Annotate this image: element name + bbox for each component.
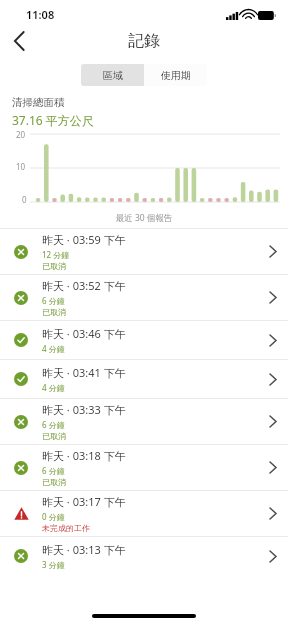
staticText: 昨天 · 03:33 下午: [42, 402, 126, 417]
staticText: 11:08: [26, 7, 55, 22]
button[interactable]: 區域: [81, 64, 144, 86]
button[interactable]: 昨天 · 03:46 下午: [0, 321, 288, 359]
staticText: 3 分鐘: [42, 559, 65, 570]
button[interactable]: 昨天 · 03:33 下午: [0, 399, 288, 444]
staticText: 昨天 · 03:13 下午: [42, 542, 126, 557]
staticText: 使用期: [161, 69, 191, 82]
staticText: 0 分鐘: [42, 511, 65, 522]
button[interactable]: 昨天 · 03:13 下午: [0, 537, 288, 575]
staticText: 20: [16, 129, 26, 140]
staticText: 清掃總面積: [12, 96, 65, 109]
staticText: 昨天 · 03:46 下午: [42, 326, 126, 341]
staticText: 6 分鐘: [42, 465, 65, 476]
staticText: 已取消: [42, 261, 66, 271]
staticText: 37.16 平方公尺: [12, 112, 94, 128]
staticText: 4 分鐘: [42, 382, 65, 393]
button[interactable]: 使用期: [144, 64, 207, 86]
staticText: 未完成的工作: [42, 523, 90, 533]
button[interactable]: 昨天 · 03:17 下午: [0, 491, 288, 536]
button[interactable]: 昨天 · 03:18 下午: [0, 445, 288, 490]
staticText: 昨天 · 03:52 下午: [42, 278, 126, 293]
staticText: 12 分鐘: [42, 249, 70, 260]
button[interactable]: 昨天 · 03:52 下午: [0, 275, 288, 320]
staticText: 昨天 · 03:18 下午: [42, 448, 126, 463]
button[interactable]: 昨天 · 03:59 下午: [0, 229, 288, 274]
staticText: 昨天 · 03:59 下午: [42, 232, 126, 247]
staticText: 4 分鐘: [42, 343, 65, 354]
staticText: 6 分鐘: [42, 419, 65, 430]
staticText: 0: [22, 194, 27, 205]
staticText: 已取消: [42, 307, 66, 317]
staticText: 最近 30 個報告: [0, 212, 288, 224]
staticText: 昨天 · 03:17 下午: [42, 494, 126, 509]
staticText: 記錄: [128, 31, 160, 51]
staticText: 6 分鐘: [42, 295, 65, 306]
button[interactable]: Back: [0, 24, 38, 58]
staticText: 已取消: [42, 477, 66, 487]
button[interactable]: 昨天 · 03:41 下午: [0, 360, 288, 398]
staticText: 已取消: [42, 431, 66, 441]
staticText: 10: [16, 161, 26, 172]
staticText: 區域: [103, 69, 123, 82]
staticText: 昨天 · 03:41 下午: [42, 365, 126, 380]
